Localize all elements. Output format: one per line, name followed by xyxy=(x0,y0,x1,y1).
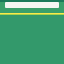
button[interactable] xyxy=(5,2,59,8)
